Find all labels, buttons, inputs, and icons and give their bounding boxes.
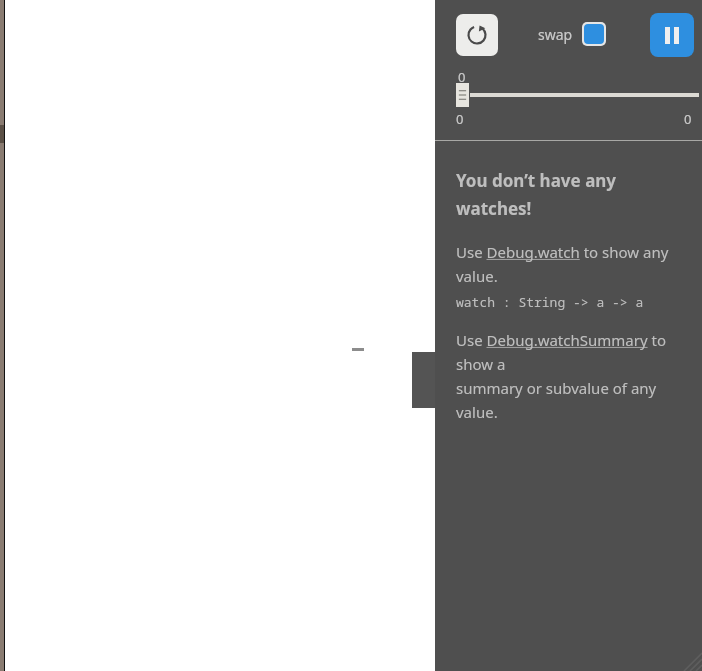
staticText: 0	[458, 68, 466, 86]
button[interactable]	[456, 83, 469, 107]
button[interactable]	[456, 14, 498, 56]
staticText: Use Debug.watch to show any value.	[456, 242, 669, 286]
button[interactable]: swap	[538, 22, 606, 46]
staticText: watch : String -> a -> a	[456, 293, 644, 311]
staticText: swap	[538, 25, 573, 44]
staticText: 0	[684, 110, 692, 128]
staticText: Use Debug.watchSummary to show a summary…	[456, 330, 666, 422]
staticText: 0	[456, 110, 464, 128]
staticText: You don’t have any watches!	[456, 169, 617, 220]
button[interactable]: Pause	[650, 13, 694, 57]
